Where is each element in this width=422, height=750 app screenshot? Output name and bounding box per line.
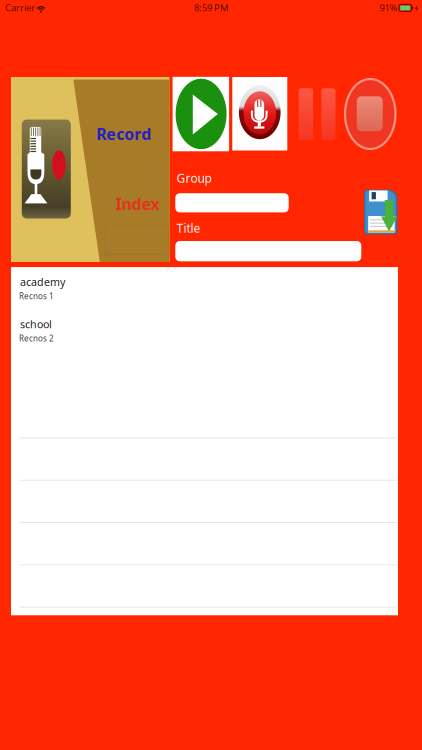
- staticText: school: [20, 317, 52, 331]
- staticText: Index: [115, 193, 159, 214]
- button[interactable]: Play: [173, 77, 229, 151]
- button[interactable]: academy: [11, 267, 398, 310]
- staticText: academy: [20, 275, 65, 289]
- button[interactable]: Group: [175, 193, 289, 212]
- staticText: 91%: [379, 1, 397, 14]
- button[interactable]: Stop: [344, 78, 396, 150]
- button[interactable]: school: [11, 310, 398, 352]
- staticText: Recnos 2: [19, 333, 54, 344]
- staticText: Record: [96, 123, 151, 144]
- button[interactable]: Title: [175, 241, 361, 261]
- staticText: Title: [176, 220, 200, 236]
- staticText: Group: [176, 170, 211, 186]
- button[interactable]: Record: [232, 77, 287, 150]
- staticText: Recnos 1: [19, 291, 54, 301]
- staticText: Carrier: [5, 1, 35, 14]
- button[interactable]: Save: [364, 189, 399, 235]
- button[interactable]: Pause: [296, 86, 338, 144]
- staticText: 8:59 PM: [194, 1, 228, 14]
